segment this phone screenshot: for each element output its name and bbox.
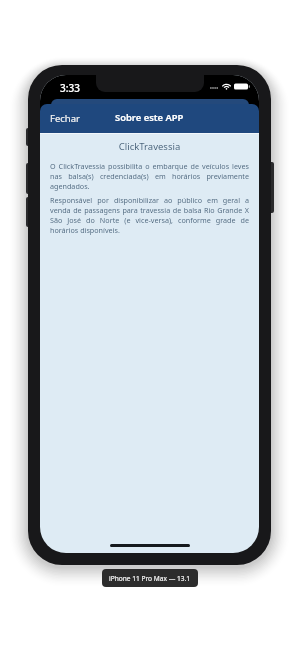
staticText: ClickTravessia [50, 140, 249, 153]
staticText: O ClickTravessia possibilita o embarque … [50, 161, 249, 191]
staticText: 3:33 [60, 81, 80, 95]
staticText: Sobre este APP [115, 111, 184, 124]
staticText: Responsável por disponibilizar ao públic… [50, 195, 249, 235]
staticText: Fechar [50, 112, 80, 125]
button[interactable]: Fechar [40, 106, 90, 131]
staticText: iPhone 11 Pro Max — 13.1 [109, 574, 191, 583]
